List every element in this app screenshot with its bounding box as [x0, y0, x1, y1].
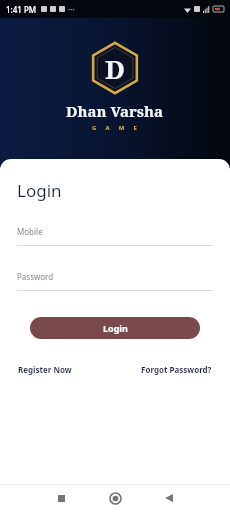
- staticText: Dhan Varsha: [66, 101, 164, 121]
- staticText: 1:41 PM: [6, 4, 37, 15]
- button[interactable]: Home: [104, 487, 126, 509]
- button[interactable]: Login: [30, 317, 200, 339]
- button[interactable]: Back: [158, 487, 180, 509]
- staticText: Password: [17, 271, 54, 282]
- staticText: Login: [17, 179, 62, 202]
- staticText: Register Now: [18, 364, 72, 375]
- staticText: Forgot Password?: [141, 364, 212, 375]
- button[interactable]: Recents: [50, 487, 72, 509]
- button[interactable]: Password: [17, 271, 213, 291]
- button[interactable]: Register Now: [17, 362, 73, 377]
- staticText: Mobile: [17, 226, 43, 237]
- staticText: ···: [68, 4, 75, 15]
- staticText: Login: [103, 322, 128, 334]
- button[interactable]: Forgot Password?: [140, 362, 213, 377]
- button[interactable]: Mobile: [17, 226, 213, 246]
- staticText: D: [105, 51, 125, 86]
- staticText: G A M E: [92, 124, 139, 132]
